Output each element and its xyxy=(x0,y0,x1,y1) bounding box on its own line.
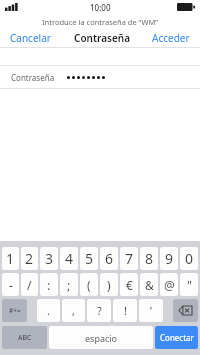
staticText: 3 xyxy=(45,249,54,268)
button[interactable]: 5 xyxy=(80,247,98,270)
staticText: Conectar xyxy=(160,332,194,343)
button[interactable]: ) xyxy=(100,273,118,296)
staticText: #+= xyxy=(9,306,21,315)
staticText: : xyxy=(47,277,51,293)
button[interactable]: Acceder xyxy=(146,29,196,47)
staticText: ) xyxy=(107,277,111,293)
button[interactable]: 7 xyxy=(120,247,138,270)
staticText: ; xyxy=(67,277,71,293)
staticText: ! xyxy=(124,303,127,318)
staticText: , xyxy=(72,303,75,318)
staticText: 5 xyxy=(85,249,94,268)
staticText: 0 xyxy=(185,249,194,268)
button[interactable]: " xyxy=(180,273,198,296)
button[interactable]: Backspace xyxy=(173,299,198,322)
button[interactable]: 3 xyxy=(40,247,58,270)
staticText: 1 xyxy=(6,249,15,268)
staticText: 4 xyxy=(65,249,74,268)
button[interactable]: ; xyxy=(60,273,78,296)
button[interactable]: : xyxy=(40,273,58,296)
button[interactable]: Cancelar xyxy=(4,29,57,47)
staticText: 2 xyxy=(25,249,34,268)
button[interactable]: 6 xyxy=(100,247,118,270)
staticText: ’ xyxy=(150,303,152,318)
button[interactable]: 0 xyxy=(180,247,198,270)
staticText: ? xyxy=(97,303,102,318)
button[interactable]: Contraseña xyxy=(0,66,200,88)
button[interactable]: 4 xyxy=(60,247,78,270)
button[interactable]: / xyxy=(21,273,38,296)
button[interactable]: espacio xyxy=(49,326,153,349)
staticText: ( xyxy=(87,277,91,293)
button[interactable]: . xyxy=(37,299,60,322)
button[interactable]: & xyxy=(140,273,158,296)
button[interactable]: Symbols xyxy=(2,299,27,322)
button[interactable]: ! xyxy=(113,299,137,322)
button[interactable]: 8 xyxy=(140,247,158,270)
button[interactable]: 9 xyxy=(160,247,178,270)
button[interactable]: Conectar xyxy=(155,326,198,349)
staticText: Cancelar xyxy=(10,31,51,45)
staticText: " xyxy=(187,277,192,293)
staticText: @ xyxy=(164,277,175,293)
staticText: 6 xyxy=(105,249,114,268)
staticText: espacio xyxy=(85,332,118,344)
staticText: 7 xyxy=(125,249,134,268)
staticText: 10:00 xyxy=(90,2,111,13)
staticText: ABC xyxy=(18,333,32,343)
button[interactable]: ( xyxy=(80,273,98,296)
staticText: / xyxy=(27,277,32,293)
staticText: Acceder xyxy=(152,31,190,45)
staticText: Introduce la contraseña de “WM” xyxy=(42,17,158,27)
button[interactable]: , xyxy=(62,299,85,322)
button[interactable]: ’ xyxy=(139,299,163,322)
button[interactable]: - xyxy=(2,273,19,296)
staticText: Contraseña xyxy=(74,31,130,45)
staticText: . xyxy=(47,303,50,318)
staticText: 9 xyxy=(165,249,174,268)
staticText: Contraseña xyxy=(11,72,55,83)
button[interactable]: 2 xyxy=(21,247,38,270)
staticText: - xyxy=(9,277,13,293)
button[interactable]: @ xyxy=(160,273,178,296)
staticText: 8 xyxy=(145,249,154,268)
button[interactable]: € xyxy=(120,273,138,296)
button[interactable]: ABC xyxy=(2,326,47,349)
button[interactable]: ? xyxy=(87,299,111,322)
staticText: & xyxy=(145,277,154,293)
button[interactable]: 1 xyxy=(2,247,19,270)
staticText: € xyxy=(126,277,133,293)
